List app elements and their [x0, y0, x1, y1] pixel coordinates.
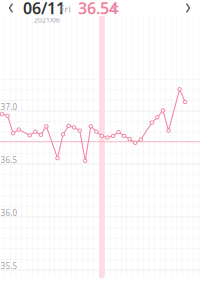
- staticText: 36.0: [0, 208, 17, 218]
- staticText: 37.0: [0, 102, 17, 112]
- button[interactable]: Previous day: [1, 0, 21, 16]
- staticText: 36.54: [78, 0, 118, 19]
- staticText: 2021/06: [34, 16, 60, 24]
- staticText: Fri: [59, 3, 70, 15]
- button[interactable]: Next day: [178, 0, 198, 16]
- staticText: 35.5: [0, 261, 17, 271]
- staticText: 36.5: [0, 155, 17, 165]
- staticText: 06/11: [23, 0, 65, 19]
- staticText: °C: [111, 4, 119, 14]
